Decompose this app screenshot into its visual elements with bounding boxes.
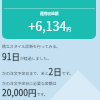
staticText: 積立スタイル診断を行ってみる。	[2, 43, 61, 49]
staticText: +6,134円	[28, 16, 71, 34]
staticText: 運用収益額	[40, 11, 59, 16]
staticText: 次の注文予定日に必要な金額は	[2, 80, 57, 86]
button[interactable]: 運用収益額	[2, 0, 96, 39]
staticText: 91日が経過しました。	[2, 50, 52, 62]
staticText: 20,000円です。	[2, 86, 48, 98]
staticText: 次の注文予定日まで、あと2日です。	[2, 65, 74, 77]
